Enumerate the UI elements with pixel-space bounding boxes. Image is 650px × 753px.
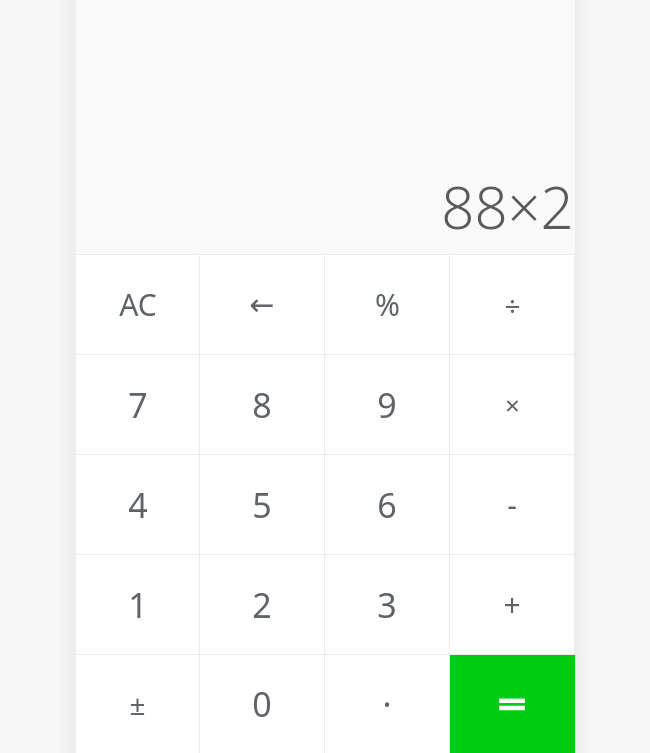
button[interactable]: 0 [200,655,324,753]
staticText: 9 [377,382,397,428]
button[interactable]: % [325,255,449,354]
button[interactable]: × [450,355,574,454]
button[interactable]: AC [76,255,199,354]
button[interactable]: 5 [200,455,324,554]
staticText: 3 [377,582,397,628]
staticText: ÷ [504,286,521,324]
button[interactable]: 6 [325,455,449,554]
staticText: 88×2 [441,167,574,246]
button[interactable]: 3 [325,555,449,654]
staticText: 0 [252,681,272,727]
staticText: 2 [252,582,272,628]
staticText: 4 [128,482,148,528]
staticText: ± [129,685,146,723]
staticText: % [375,284,400,325]
button[interactable]: 9 [325,355,449,454]
button[interactable]: Backspace [200,255,324,354]
staticText: AC [119,284,157,325]
staticText: 1 [128,582,148,628]
staticText: 8 [252,382,272,428]
staticText: + [503,584,521,625]
button[interactable]: 7 [76,355,199,454]
button[interactable]: 8 [200,355,324,454]
button[interactable]: Equals [450,655,574,753]
button[interactable]: Plus minus [76,655,199,753]
button[interactable]: 1 [76,555,199,654]
button[interactable]: Decimal point [325,655,449,753]
button[interactable]: ÷ [450,255,574,354]
staticText: · [382,681,392,727]
staticText: 7 [128,382,148,428]
staticText: × [505,387,520,422]
button[interactable]: 4 [76,455,199,554]
button[interactable]: 2 [200,555,324,654]
staticText: ← [249,287,275,322]
staticText: - [507,484,517,525]
button[interactable]: + [450,555,574,654]
staticText: 6 [377,482,397,528]
button[interactable]: - [450,455,574,554]
staticText: 5 [252,482,272,528]
